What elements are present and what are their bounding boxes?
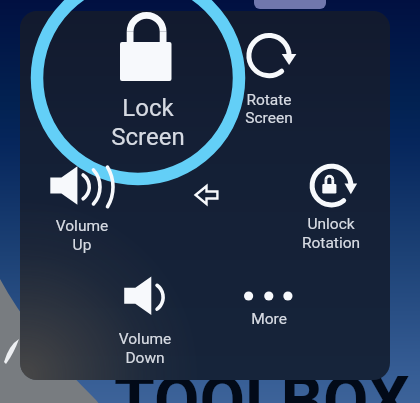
staticText: Volume Down bbox=[114, 330, 176, 376]
button[interactable]: Rotate Screen bbox=[242, 30, 302, 82]
staticText: Lock Screen bbox=[98, 94, 198, 156]
staticText: Rotate Screen bbox=[238, 91, 300, 133]
staticText: Unlock Rotation bbox=[293, 215, 369, 261]
staticText: Volume Up bbox=[52, 217, 112, 263]
button[interactable]: Back bbox=[193, 183, 221, 207]
button[interactable]: More bbox=[242, 288, 296, 306]
button[interactable] bbox=[46, 164, 114, 214]
button[interactable] bbox=[95, 6, 199, 156]
staticText: TOOLBOX bbox=[114, 363, 410, 403]
staticText: More bbox=[238, 310, 300, 332]
button[interactable]: Unlock Rotation bbox=[308, 163, 360, 209]
button[interactable] bbox=[120, 274, 166, 318]
